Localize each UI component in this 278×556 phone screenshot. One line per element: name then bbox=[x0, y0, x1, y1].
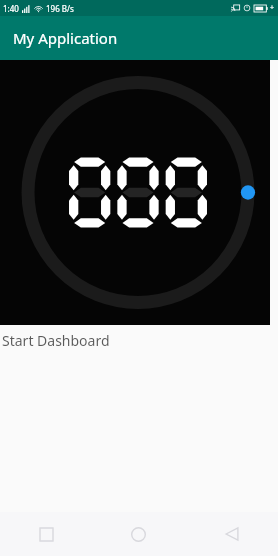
button[interactable]: Timer dial bbox=[0, 60, 270, 325]
button[interactable]: Home bbox=[92, 512, 185, 556]
staticText: + bbox=[270, 3, 275, 13]
button[interactable]: Recent apps bbox=[0, 512, 92, 556]
button[interactable]: Start Dashboard bbox=[0, 325, 278, 356]
staticText: My Application bbox=[13, 28, 118, 48]
staticText: 1:40 bbox=[3, 3, 19, 14]
staticText: 196 B/s bbox=[46, 3, 74, 14]
staticText: Start Dashboard bbox=[2, 331, 110, 350]
